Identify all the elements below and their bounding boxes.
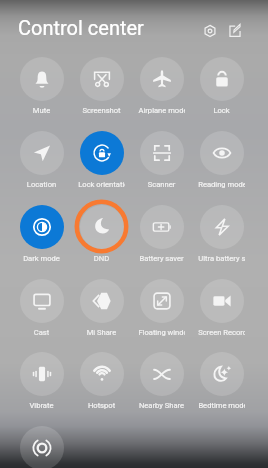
staticText: Cast <box>18 328 65 337</box>
staticText: Hotspot <box>78 401 125 410</box>
button[interactable]: Battery saver <box>131 200 191 263</box>
staticText: Ultra battery saver <box>198 254 245 263</box>
staticText: Mi Share <box>78 328 125 337</box>
button[interactable]: Ringer <box>11 421 71 468</box>
staticText: Location <box>18 180 65 189</box>
button[interactable]: Lock orientation <box>71 126 131 189</box>
button[interactable]: Airplane mode <box>131 52 191 115</box>
button[interactable]: Vibrate <box>11 347 71 410</box>
button[interactable]: Reading mode <box>191 126 251 189</box>
staticText: Vibrate <box>18 401 65 410</box>
staticText: Mute <box>18 106 65 115</box>
button[interactable]: Screenshot <box>71 52 131 115</box>
button[interactable]: Mute <box>11 52 71 115</box>
staticText: DND <box>78 254 125 263</box>
staticText: Bedtime mode <box>198 401 245 410</box>
staticText: Scanner <box>138 180 185 189</box>
button[interactable]: Dark mode <box>11 200 71 263</box>
staticText: Control center <box>18 16 144 39</box>
button[interactable]: DND <box>71 200 131 263</box>
staticText: Screen Recorder <box>198 328 245 337</box>
staticText: Screenshot <box>78 106 125 115</box>
button[interactable]: Edit tiles <box>224 20 246 42</box>
button[interactable]: Location <box>11 126 71 189</box>
button[interactable]: Nearby Share <box>131 347 191 410</box>
button[interactable]: Ultra battery saver <box>191 200 251 263</box>
staticText: Battery saver <box>138 254 185 263</box>
staticText: Dark mode <box>18 254 65 263</box>
button[interactable]: Floating window <box>131 274 191 337</box>
staticText: Nearby Share <box>138 401 185 410</box>
button[interactable]: Scanner <box>131 126 191 189</box>
staticText: Reading mode <box>198 180 245 189</box>
staticText: Lock <box>198 106 245 115</box>
button[interactable]: Hotspot <box>71 347 131 410</box>
button[interactable]: Settings <box>199 20 221 42</box>
staticText: Lock orientation <box>78 180 125 189</box>
button[interactable]: Bedtime mode <box>191 347 251 410</box>
staticText: Airplane mode <box>138 106 185 115</box>
button[interactable]: Mi Share <box>71 274 131 337</box>
button[interactable]: Cast <box>11 274 71 337</box>
button[interactable]: Screen Recorder <box>191 274 251 337</box>
staticText: Floating window <box>138 328 185 337</box>
button[interactable]: Lock <box>191 52 251 115</box>
